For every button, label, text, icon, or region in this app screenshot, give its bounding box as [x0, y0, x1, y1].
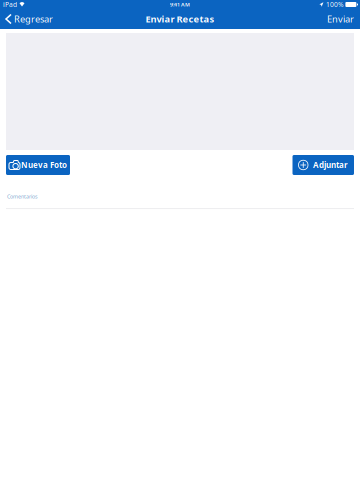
staticText: 9:41 AM [170, 1, 190, 8]
staticText: Nueva Foto [21, 160, 67, 170]
button[interactable]: Nueva Foto [6, 155, 70, 175]
staticText: iPad [3, 0, 17, 9]
button[interactable]: Regresar [0, 9, 59, 29]
staticText: Adjuntar [313, 160, 348, 170]
button[interactable]: Enviar [321, 9, 360, 29]
staticText: Enviar [327, 13, 354, 25]
staticText: Enviar Recetas [145, 13, 214, 25]
staticText: Comentarios [7, 193, 38, 200]
staticText: 100% [326, 0, 344, 9]
staticText: Regresar [14, 13, 53, 25]
button[interactable]: Adjuntar [292, 155, 354, 175]
